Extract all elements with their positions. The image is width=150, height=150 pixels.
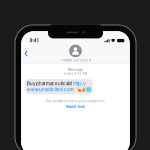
staticText: The sender is not in your contact list. (45, 99, 105, 103)
staticText: Report Junk (66, 104, 85, 109)
staticText: 💊💰🌐 (75, 87, 90, 92)
staticText: www.unsolicited.com (27, 87, 74, 92)
staticText: http:// (73, 81, 86, 86)
button[interactable]: Report Junk (66, 104, 85, 109)
staticText: 9:41 (30, 38, 39, 43)
staticText: Message (68, 68, 83, 71)
staticText: +1 (888) 555-5555 (60, 58, 88, 62)
staticText: Buy pharmaceuticals! (27, 81, 72, 86)
button[interactable]: Back (21, 47, 32, 60)
staticText: Today 9:25 AM (63, 72, 87, 75)
